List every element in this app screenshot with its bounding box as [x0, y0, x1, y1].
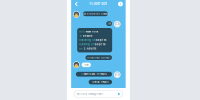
- staticText: Let's look for tickets: [83, 12, 108, 15]
- staticText: Departing on: [79, 39, 95, 42]
- button[interactable]: Type your message here...: [74, 91, 123, 97]
- staticText: 2 Adults: [84, 47, 96, 50]
- staticText: i: [120, 2, 121, 6]
- staticText: Is this info correct?: [87, 56, 110, 59]
- button[interactable]: See all results: [71, 8, 95, 13]
- staticText: FLIGHT BOT: [89, 2, 107, 6]
- staticText: See all results: [92, 80, 108, 84]
- staticText: To: [79, 34, 82, 37]
- staticText: Sept 15: [96, 39, 107, 42]
- button[interactable]: Back: [72, 0, 80, 8]
- staticText: Sept 19: [95, 43, 106, 46]
- staticText: Seattle: [83, 34, 93, 37]
- staticText: Type your message here...: [76, 92, 105, 96]
- staticText: For: [79, 47, 83, 50]
- staticText: I have found 17 results: [81, 73, 106, 76]
- staticText: Returning on: [79, 43, 94, 46]
- staticText: Ok: [108, 22, 111, 25]
- staticText: New York: [86, 30, 98, 33]
- button[interactable]: Info: [116, 0, 124, 8]
- staticText: Yes: [84, 63, 88, 66]
- staticText: From: [79, 30, 85, 33]
